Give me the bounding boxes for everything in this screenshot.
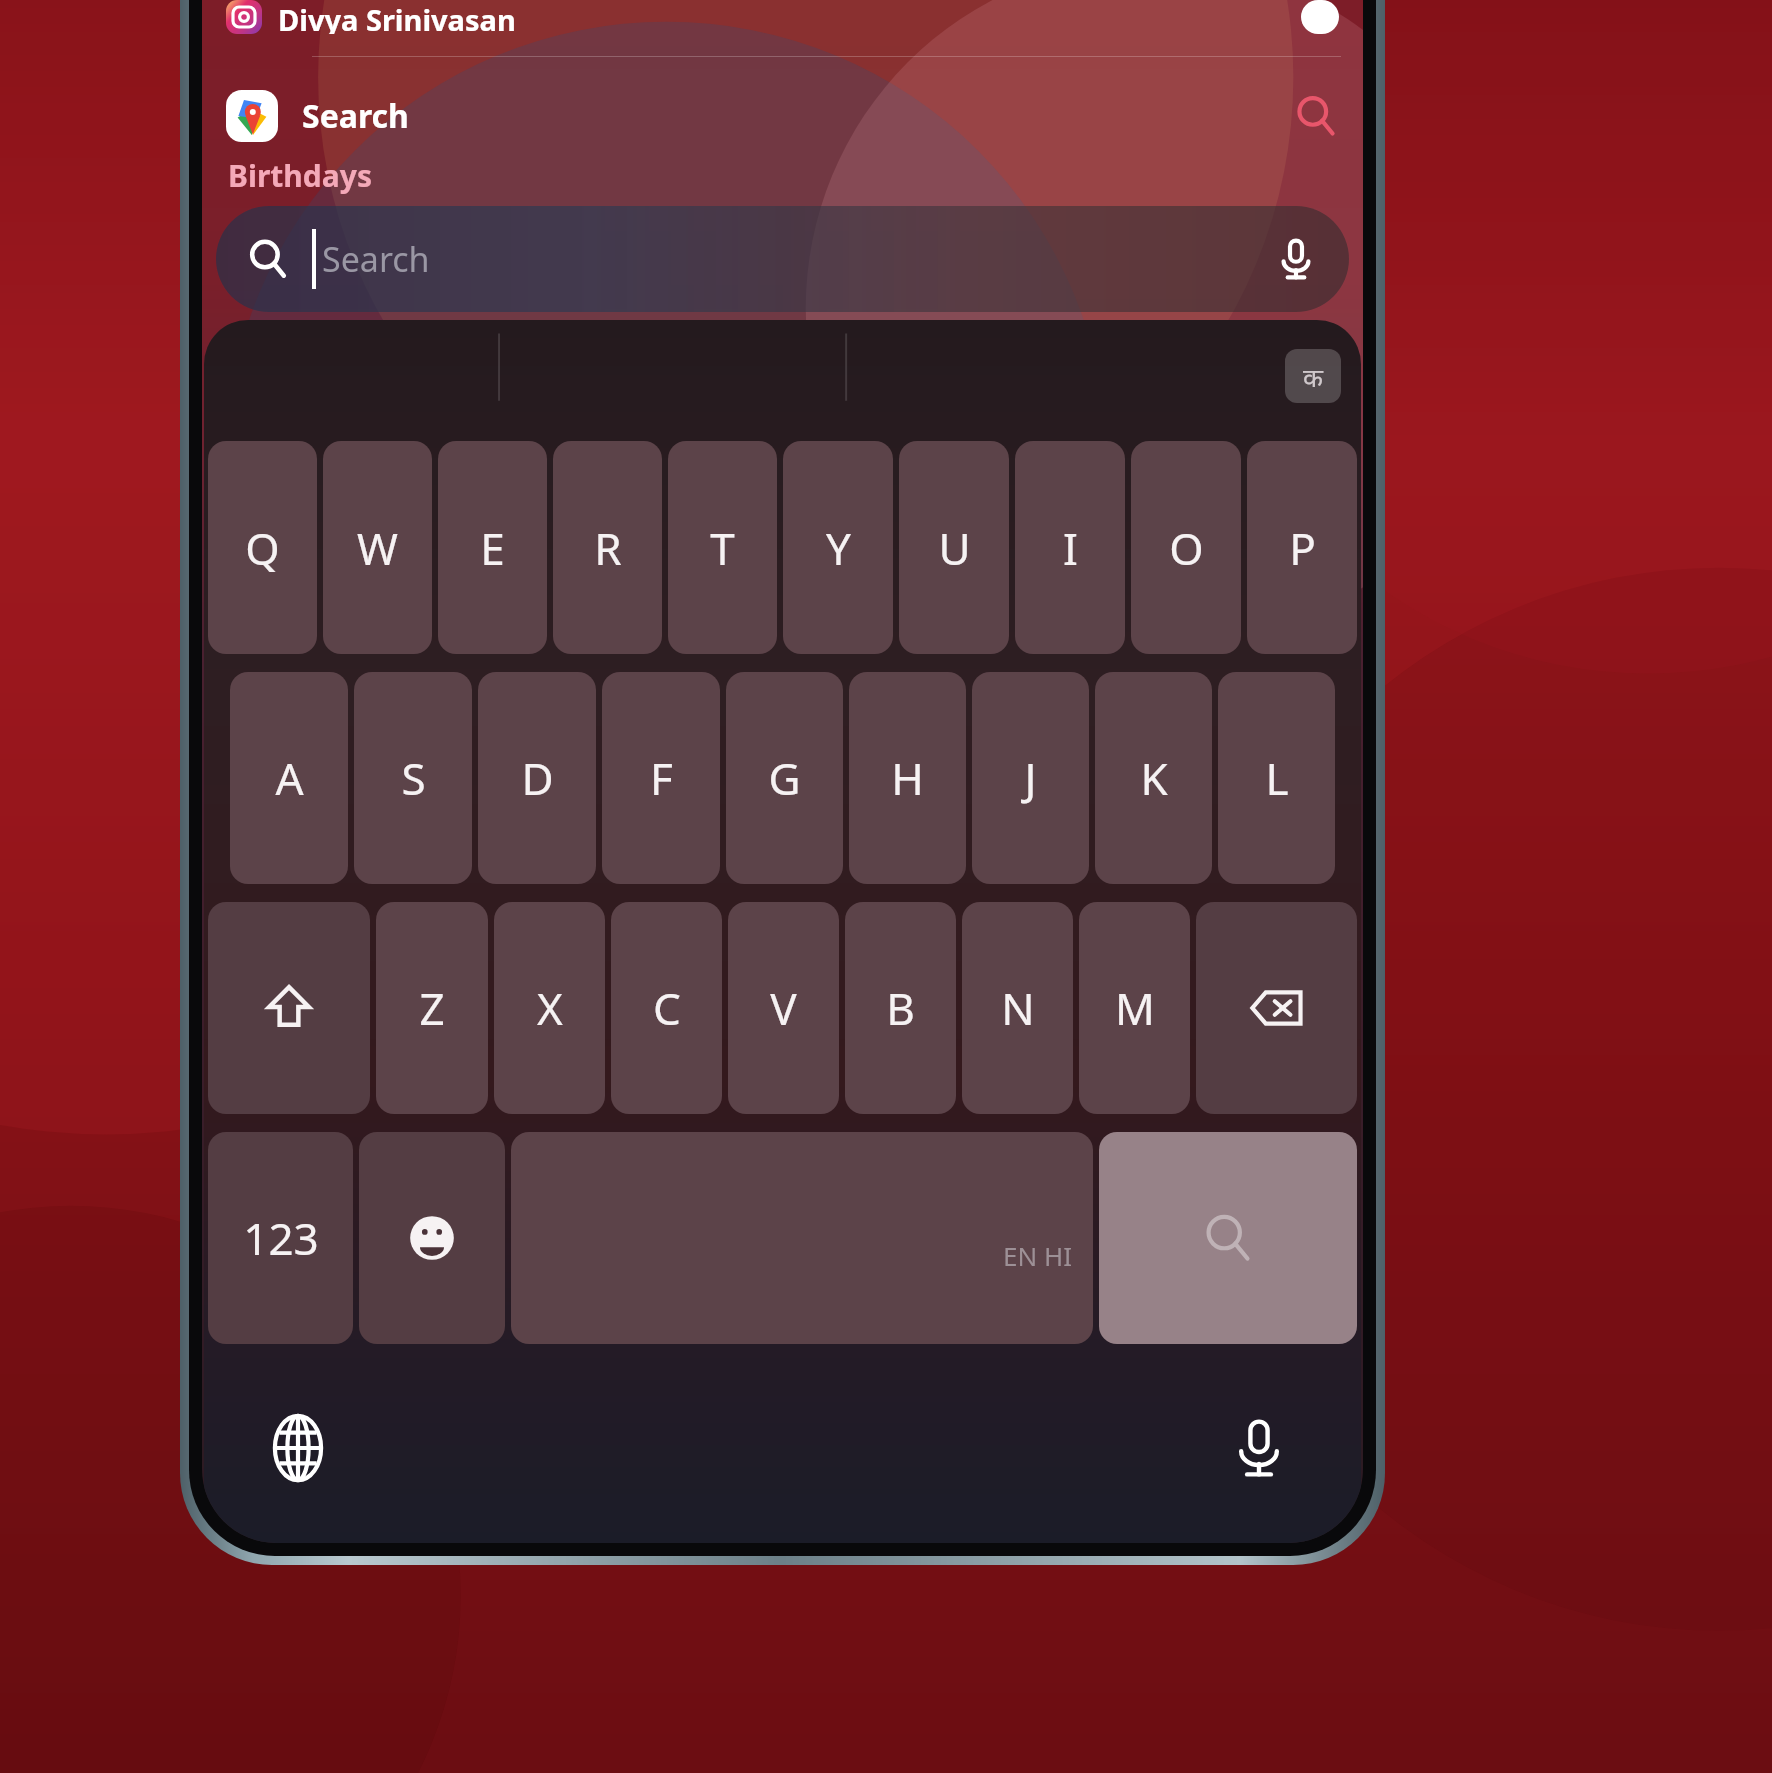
button[interactable]: O (1131, 441, 1241, 654)
staticText: H (891, 748, 924, 808)
staticText: 123 (243, 1208, 319, 1268)
staticText: J (1024, 748, 1037, 808)
staticText: Search (322, 236, 430, 282)
staticText: N (1001, 978, 1035, 1038)
button[interactable]: 123 (208, 1132, 353, 1344)
staticText: T (710, 518, 735, 578)
staticText: X (537, 978, 563, 1038)
button[interactable]: Divya Srinivasan (202, 0, 1363, 34)
staticText: EN HI (1003, 1238, 1073, 1273)
staticText: R (594, 518, 622, 578)
button[interactable]: R (553, 441, 662, 654)
staticText: K (1140, 748, 1168, 808)
button[interactable]: T (668, 441, 777, 654)
staticText: D (521, 748, 554, 808)
button[interactable]: Search (1099, 1132, 1357, 1344)
staticText: M (1115, 978, 1155, 1038)
staticText: Divya Srinivasan (278, 0, 516, 34)
button[interactable]: E (438, 441, 547, 654)
button[interactable]: Z (376, 902, 488, 1114)
button[interactable]: क (1285, 349, 1341, 403)
button[interactable]: W (323, 441, 432, 654)
staticText: C (653, 978, 681, 1038)
staticText: S (401, 748, 426, 808)
button[interactable]: X (494, 902, 605, 1114)
staticText: I (1063, 518, 1078, 578)
button[interactable]: D (478, 672, 596, 884)
staticText: V (770, 978, 797, 1038)
button[interactable]: Shift (208, 902, 370, 1114)
staticText: O (1169, 518, 1204, 578)
staticText: G (768, 748, 801, 808)
button[interactable]: L (1218, 672, 1335, 884)
button[interactable]: J (972, 672, 1089, 884)
button[interactable]: P (1247, 441, 1357, 654)
staticText: Search (302, 94, 409, 138)
button[interactable]: B (845, 902, 956, 1114)
staticText: क (1303, 359, 1323, 394)
button[interactable]: U (899, 441, 1009, 654)
staticText: L (1265, 748, 1289, 808)
staticText: B (886, 978, 915, 1038)
button[interactable]: Q (208, 441, 317, 654)
other: Search (1293, 93, 1339, 139)
button[interactable]: I (1015, 441, 1125, 654)
button[interactable]: V (728, 902, 839, 1114)
button[interactable]: Search (202, 83, 1363, 149)
staticText: Birthdays (228, 155, 372, 196)
button[interactable]: C (611, 902, 722, 1114)
button[interactable]: Space (511, 1132, 1093, 1344)
staticText: W (357, 518, 398, 578)
staticText: A (275, 748, 304, 808)
staticText: E (480, 518, 505, 578)
other: Voice search (1273, 236, 1319, 282)
staticText: Z (419, 978, 445, 1038)
button[interactable]: Y (783, 441, 893, 654)
staticText: U (938, 518, 971, 578)
button[interactable]: G (726, 672, 843, 884)
button[interactable]: Backspace (1196, 902, 1357, 1114)
button[interactable]: K (1095, 672, 1212, 884)
button[interactable]: A (230, 672, 348, 884)
staticText: P (1289, 518, 1316, 578)
staticText: F (650, 748, 673, 808)
button[interactable]: H (849, 672, 966, 884)
staticText: Y (826, 518, 851, 578)
button[interactable]: N (962, 902, 1073, 1114)
button[interactable]: Search (216, 206, 1349, 312)
button[interactable]: Voice input (1217, 1406, 1301, 1490)
button[interactable]: Emoji (359, 1132, 505, 1344)
button[interactable]: M (1079, 902, 1190, 1114)
button[interactable]: F (602, 672, 720, 884)
button[interactable]: Change language (256, 1406, 340, 1490)
button[interactable]: S (354, 672, 472, 884)
staticText: Q (245, 518, 280, 578)
